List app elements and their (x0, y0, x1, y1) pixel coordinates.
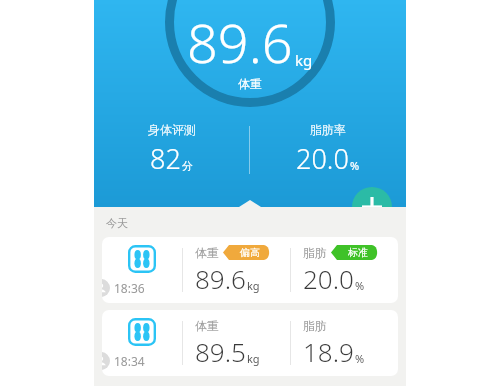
staticText: kg (295, 50, 313, 70)
staticText: % (355, 351, 365, 366)
staticText: 体重 (238, 76, 262, 91)
staticText: 标准 (348, 246, 368, 259)
button[interactable]: 18:34 (102, 310, 398, 376)
staticText: 脂肪 (303, 245, 327, 260)
staticText: 体重 (195, 245, 219, 260)
staticText: % (355, 278, 365, 293)
staticText: 89.6 (195, 261, 246, 296)
staticText: 脂肪率 (310, 122, 346, 137)
button[interactable]: Add measurement (352, 187, 392, 227)
staticText: 偏高 (240, 246, 260, 259)
button[interactable]: 18:36 (102, 237, 398, 303)
staticText: 20.0 (303, 261, 354, 296)
staticText: 18:36 (114, 280, 145, 296)
staticText: kg (247, 351, 260, 366)
staticText: 分 (182, 159, 193, 173)
staticText: 身体评测 (148, 122, 196, 137)
button[interactable]: 脂肪率 (250, 122, 406, 177)
staticText: 20.0 (296, 140, 349, 177)
staticText: 18.9 (303, 334, 354, 369)
staticText: 体重 (195, 318, 219, 333)
staticText: % (350, 158, 360, 173)
staticText: 89.5 (195, 334, 246, 369)
staticText: 18:34 (114, 353, 145, 369)
staticText: 82 (150, 140, 181, 177)
staticText: 脂肪 (303, 318, 327, 333)
button[interactable]: 身体评测 (94, 122, 249, 177)
staticText: kg (247, 278, 260, 293)
staticText: 89.6 (187, 5, 293, 79)
staticText: 今天 (106, 216, 128, 230)
